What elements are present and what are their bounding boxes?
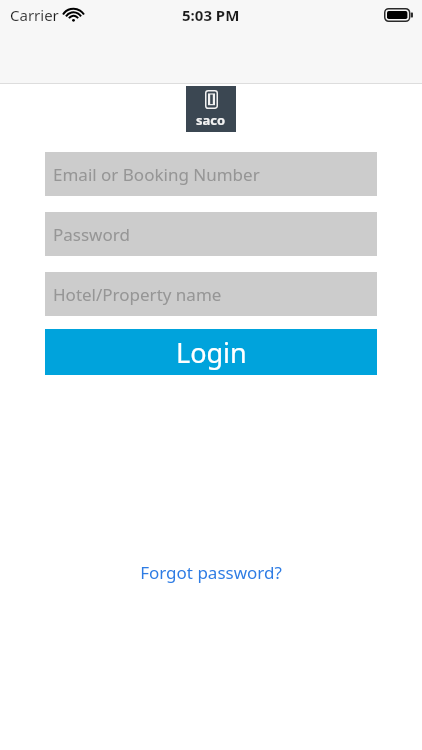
button[interactable]: Password: [45, 212, 377, 256]
button[interactable]: Hotel/Property name: [45, 272, 377, 316]
staticText: Hotel/Property name: [53, 283, 222, 306]
other: saco logo: [186, 86, 236, 132]
staticText: Login: [176, 334, 247, 371]
staticText: Carrier: [10, 5, 59, 25]
staticText: 5:03 PM: [182, 5, 240, 25]
staticText: Email or Booking Number: [53, 163, 260, 186]
button[interactable]: Email or Booking Number: [45, 152, 377, 196]
staticText: saco: [196, 111, 226, 129]
button[interactable]: Login: [45, 329, 377, 375]
button[interactable]: Forgot password?: [128, 555, 294, 590]
staticText: Password: [53, 223, 130, 246]
staticText: Forgot password?: [140, 561, 282, 584]
